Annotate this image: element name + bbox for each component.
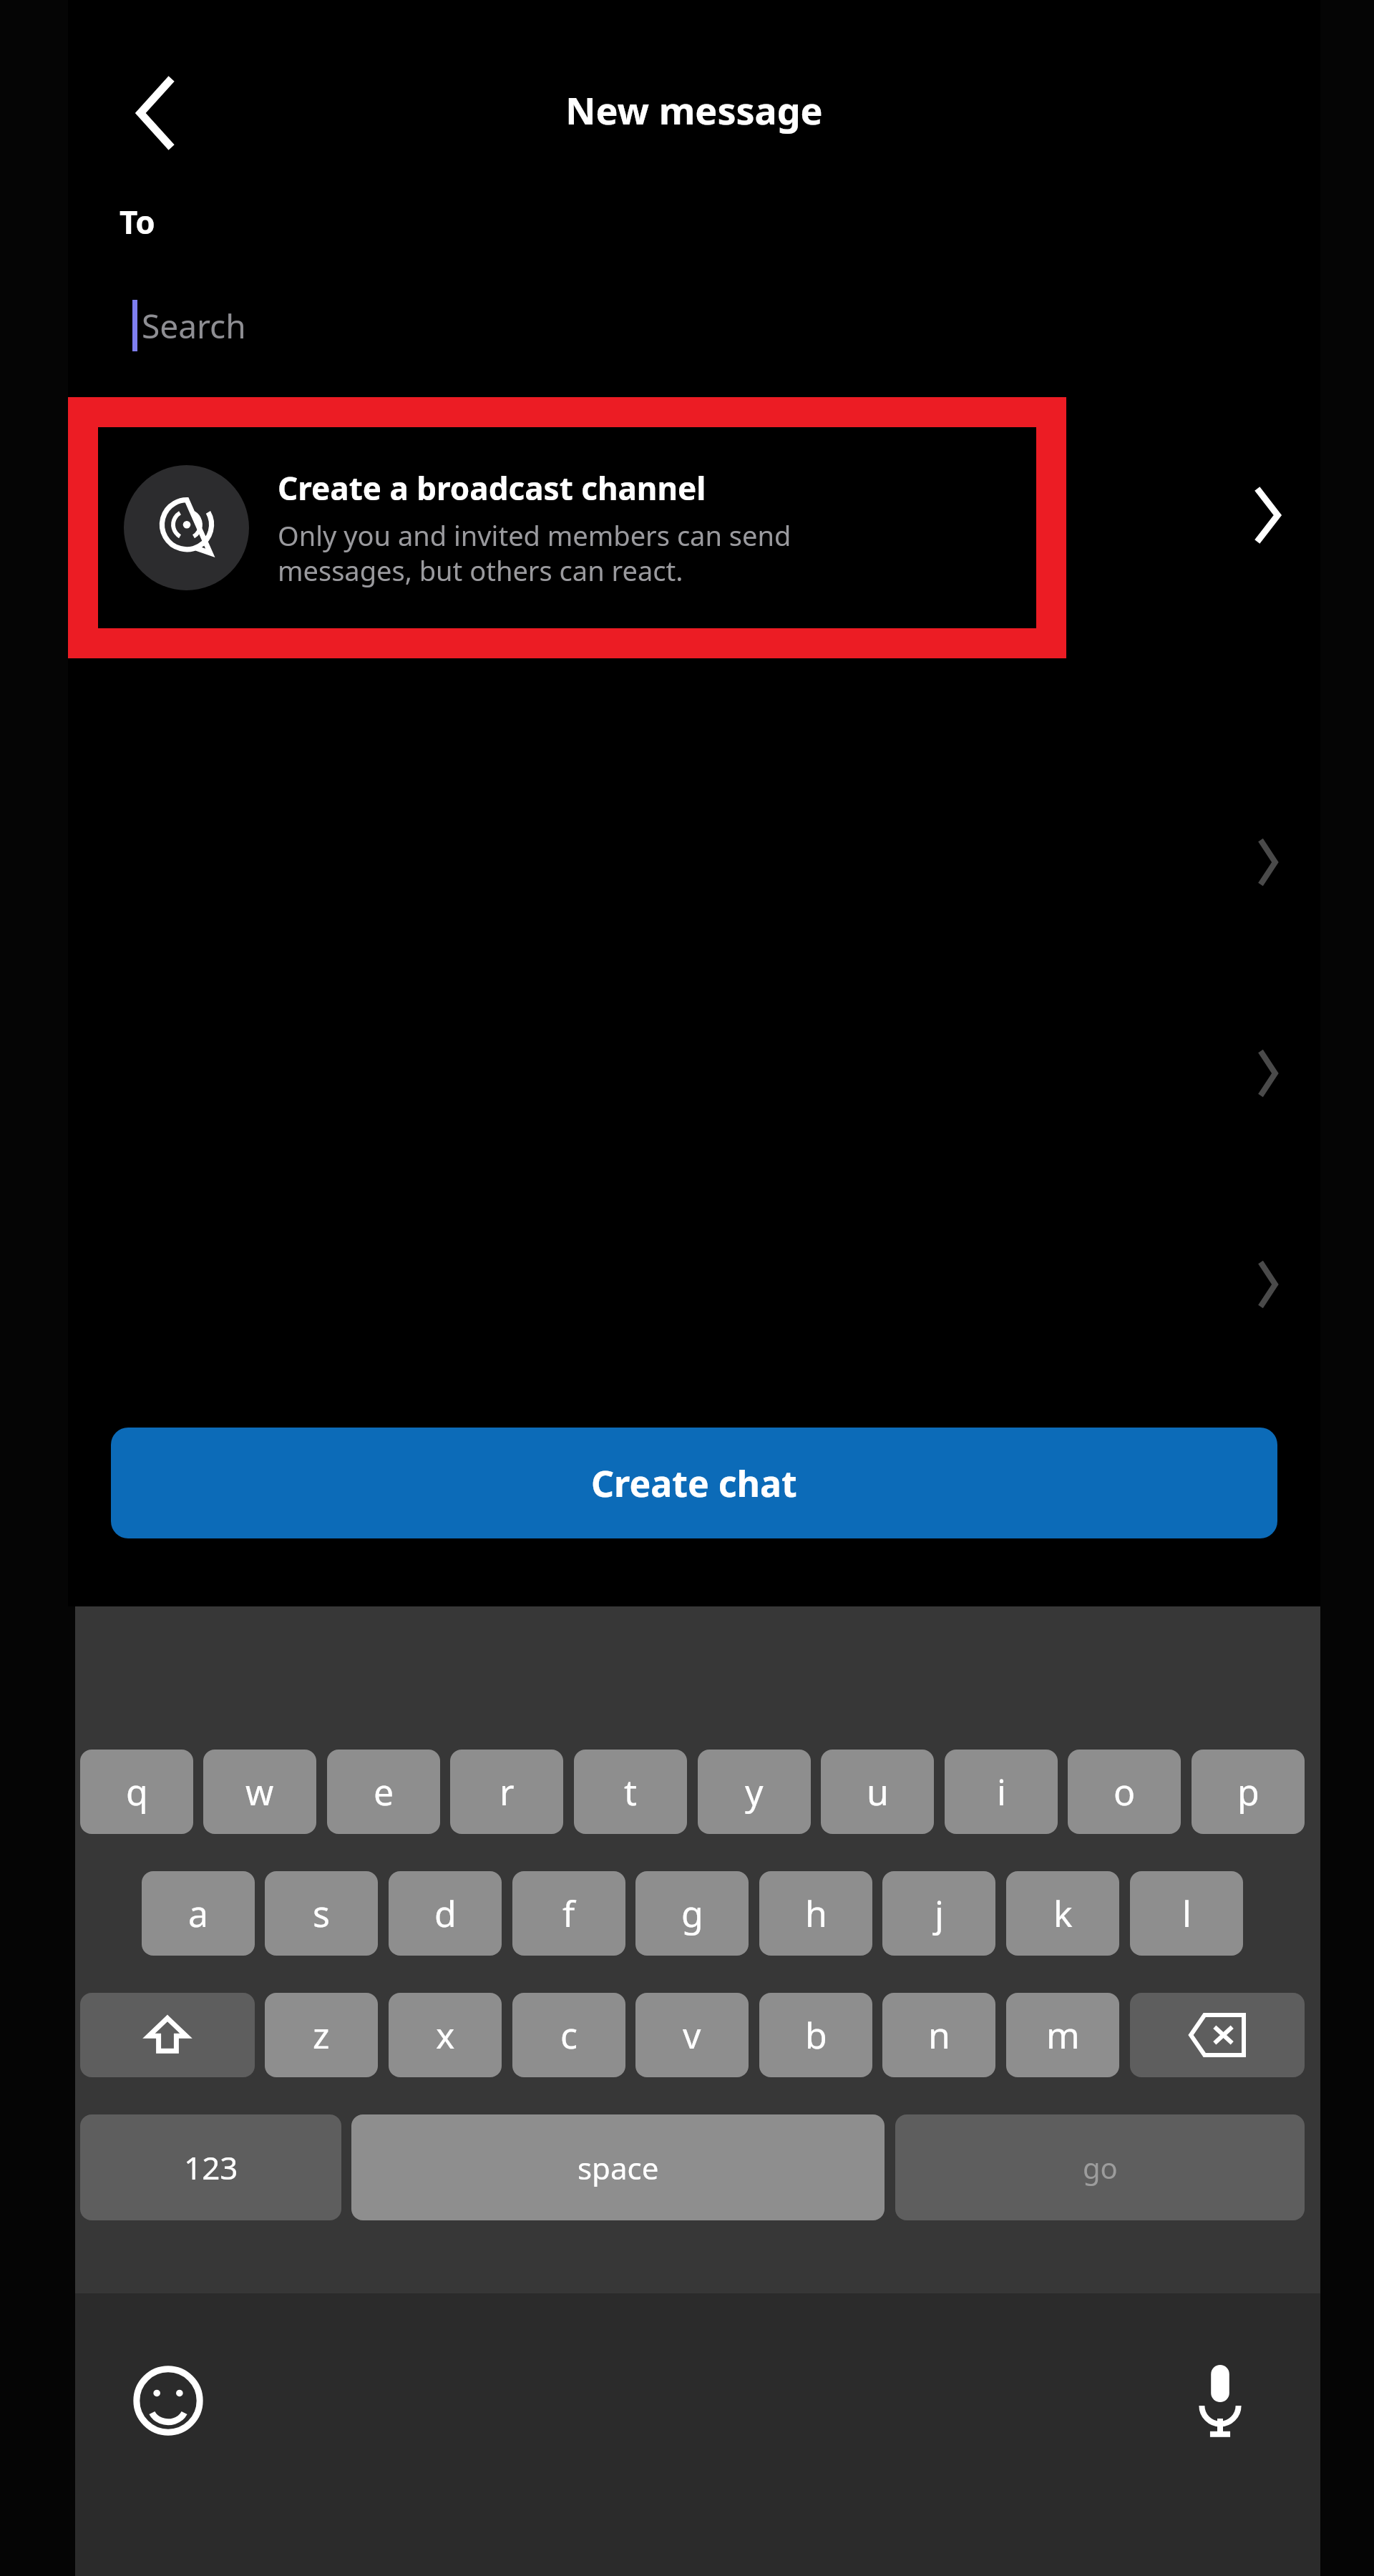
button[interactable]: Shift	[80, 1993, 255, 2077]
button[interactable]: x	[389, 1993, 502, 2077]
staticText: x	[436, 2011, 455, 2059]
button[interactable]: Voice input	[1163, 2343, 1277, 2458]
button[interactable]: b	[759, 1993, 872, 2077]
staticText: a	[188, 1889, 209, 1938]
staticText: i	[997, 1767, 1006, 1816]
button[interactable]: Open	[1213, 1238, 1320, 1331]
staticText: y	[745, 1767, 764, 1816]
button[interactable]: f	[512, 1871, 625, 1956]
button[interactable]: Create a broadcast channel	[68, 397, 1320, 658]
button[interactable]: p	[1192, 1750, 1305, 1834]
button[interactable]: Back	[97, 54, 218, 172]
button[interactable]: n	[882, 1993, 995, 2077]
staticText: 123	[184, 2146, 238, 2189]
button[interactable]: s	[265, 1871, 378, 1956]
staticText: Only you and invited members can send me…	[278, 517, 791, 589]
button[interactable]: l	[1130, 1871, 1243, 1956]
staticText: t	[624, 1767, 638, 1816]
staticText: k	[1053, 1889, 1073, 1938]
button[interactable]: go	[895, 2114, 1305, 2220]
button[interactable]: z	[265, 1993, 378, 2077]
button[interactable]: Open broadcast channel	[1213, 458, 1320, 572]
button[interactable]: Emoji	[111, 2343, 225, 2458]
staticText: n	[928, 2011, 950, 2059]
staticText: Create chat	[591, 1459, 797, 1508]
button[interactable]: w	[203, 1750, 316, 1834]
staticText: o	[1114, 1767, 1136, 1816]
staticText: To	[120, 200, 155, 243]
button[interactable]: c	[512, 1993, 625, 2077]
button[interactable]: Search	[120, 286, 1265, 365]
button[interactable]: k	[1006, 1871, 1119, 1956]
staticText: Create a broadcast channel	[278, 467, 706, 509]
staticText: d	[434, 1889, 457, 1938]
button[interactable]: Open	[1213, 816, 1320, 909]
button[interactable]: q	[80, 1750, 193, 1834]
staticText: Search	[142, 303, 246, 348]
button[interactable]: Open	[1213, 1027, 1320, 1120]
button[interactable]: m	[1006, 1993, 1119, 2077]
button[interactable]: Backspace	[1130, 1993, 1305, 2077]
staticText: g	[681, 1889, 703, 1938]
staticText: l	[1182, 1889, 1192, 1938]
button[interactable]: i	[945, 1750, 1058, 1834]
button[interactable]: 123	[80, 2114, 341, 2220]
button[interactable]: v	[635, 1993, 749, 2077]
staticText: s	[313, 1889, 330, 1938]
staticText: e	[374, 1767, 394, 1816]
button[interactable]: d	[389, 1871, 502, 1956]
staticText: b	[805, 2011, 827, 2059]
staticText: h	[805, 1889, 827, 1938]
button[interactable]: space	[351, 2114, 885, 2220]
button[interactable]: u	[821, 1750, 934, 1834]
staticText: q	[126, 1767, 148, 1816]
button[interactable]: h	[759, 1871, 872, 1956]
staticText: go	[1083, 2148, 1118, 2187]
button[interactable]: g	[635, 1871, 749, 1956]
staticText: j	[935, 1889, 944, 1938]
staticText: p	[1237, 1767, 1259, 1816]
button[interactable]: a	[142, 1871, 255, 1956]
button[interactable]: r	[450, 1750, 563, 1834]
staticText: f	[562, 1889, 575, 1938]
button[interactable]: o	[1068, 1750, 1181, 1834]
staticText: r	[500, 1767, 515, 1816]
button[interactable]: t	[574, 1750, 687, 1834]
staticText: w	[245, 1767, 274, 1816]
staticText: New message	[565, 84, 823, 135]
staticText: z	[313, 2011, 330, 2059]
button[interactable]: j	[882, 1871, 995, 1956]
button[interactable]: y	[698, 1750, 811, 1834]
staticText: c	[560, 2011, 578, 2059]
staticText: v	[683, 2011, 701, 2059]
staticText: space	[578, 2147, 659, 2188]
staticText: u	[867, 1767, 889, 1816]
staticText: m	[1046, 2011, 1080, 2059]
button[interactable]: e	[327, 1750, 440, 1834]
button[interactable]: Create chat	[111, 1428, 1277, 1538]
